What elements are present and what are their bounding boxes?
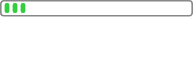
button[interactable]: Strength meter: [0, 0, 193, 64]
